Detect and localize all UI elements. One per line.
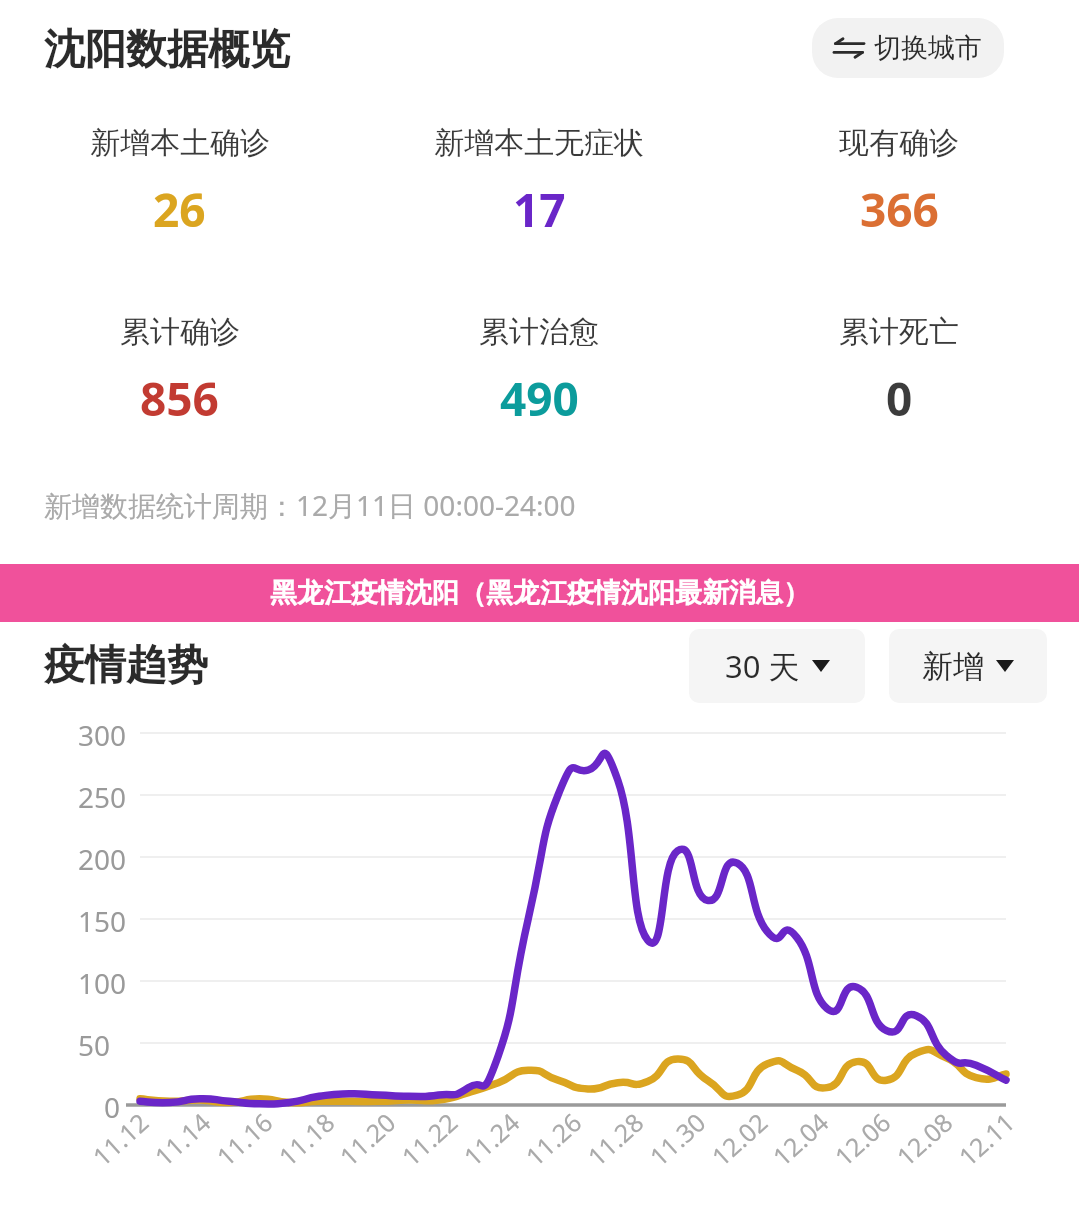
staticText: 12.02 <box>704 1105 774 1173</box>
staticText: 17 <box>513 178 566 241</box>
staticText: 切换城市 <box>874 31 982 65</box>
staticText: 累计确诊 <box>120 313 240 351</box>
staticText: 0 <box>886 367 913 430</box>
staticText: 11.30 <box>642 1105 712 1173</box>
staticText: 30 天 <box>725 645 800 687</box>
staticText: 现有确诊 <box>839 124 959 162</box>
staticText: 200 <box>78 840 127 878</box>
staticText: 11.26 <box>518 1105 588 1173</box>
staticText: 新增本土无症状 <box>434 124 644 162</box>
staticText: 150 <box>78 902 127 940</box>
staticText: 新增本土确诊 <box>90 124 270 162</box>
button[interactable]: 切换城市 <box>812 18 1004 78</box>
button[interactable]: 新增 <box>889 629 1047 703</box>
staticText: 11.16 <box>209 1105 279 1173</box>
staticText: 250 <box>78 778 127 816</box>
staticText: 26 <box>153 178 206 241</box>
staticText: 疫情趋势 <box>44 640 208 692</box>
staticText: 12.04 <box>765 1105 835 1173</box>
staticText: 11.20 <box>332 1105 402 1173</box>
staticText: 490 <box>500 367 579 430</box>
staticText: 300 <box>78 716 127 754</box>
staticText: 新增 <box>922 647 984 686</box>
staticText: 50 <box>78 1026 111 1064</box>
staticText: 0 <box>104 1088 121 1126</box>
staticText: 100 <box>78 964 127 1002</box>
staticText: 11.22 <box>394 1105 464 1173</box>
staticText: 12.06 <box>827 1105 897 1173</box>
staticText: 11.18 <box>271 1105 341 1173</box>
staticText: 12.11 <box>951 1105 1021 1173</box>
staticText: 沈阳数据概览 <box>44 24 290 76</box>
staticText: 11.28 <box>580 1105 650 1173</box>
staticText: 366 <box>860 178 939 241</box>
staticText: 累计死亡 <box>839 313 959 351</box>
staticText: 新增数据统计周期：12月11日 00:00-24:00 <box>44 486 576 524</box>
staticText: 12.08 <box>889 1105 959 1173</box>
staticText: 11.14 <box>147 1105 217 1173</box>
staticText: 11.12 <box>85 1105 155 1173</box>
staticText: 856 <box>140 367 219 430</box>
staticText: 累计治愈 <box>479 313 599 351</box>
button[interactable]: 30 天 <box>689 629 865 703</box>
staticText: 黑龙江疫情沈阳（黑龙江疫情沈阳最新消息） <box>270 576 810 610</box>
staticText: 11.24 <box>456 1105 526 1173</box>
